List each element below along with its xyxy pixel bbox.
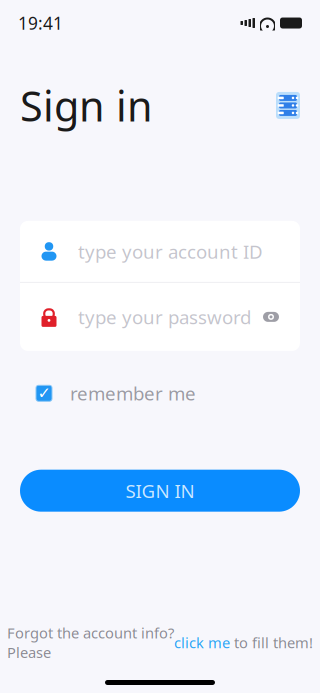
button[interactable]: Server settings [276,92,300,118]
staticText: ✓ [37,384,50,402]
staticText: Forgot the account info? Please [7,623,174,662]
staticText: Sign in [20,78,153,133]
button[interactable]: type your password [20,283,300,351]
staticText: remember me [70,381,196,406]
button[interactable]: Show password [260,306,282,328]
staticText: 19:41 [18,11,63,34]
button[interactable]: SIGN IN [20,470,300,512]
staticText: type your password [78,304,251,329]
staticText: type your account ID [78,239,263,264]
button[interactable]: ✓ [36,375,196,412]
staticText: click me [174,633,230,652]
staticText: to fill them! [230,633,313,652]
button[interactable]: Forgot the account info? Please [7,623,313,662]
staticText: SIGN IN [125,478,194,503]
button[interactable]: type your account ID [20,221,300,282]
